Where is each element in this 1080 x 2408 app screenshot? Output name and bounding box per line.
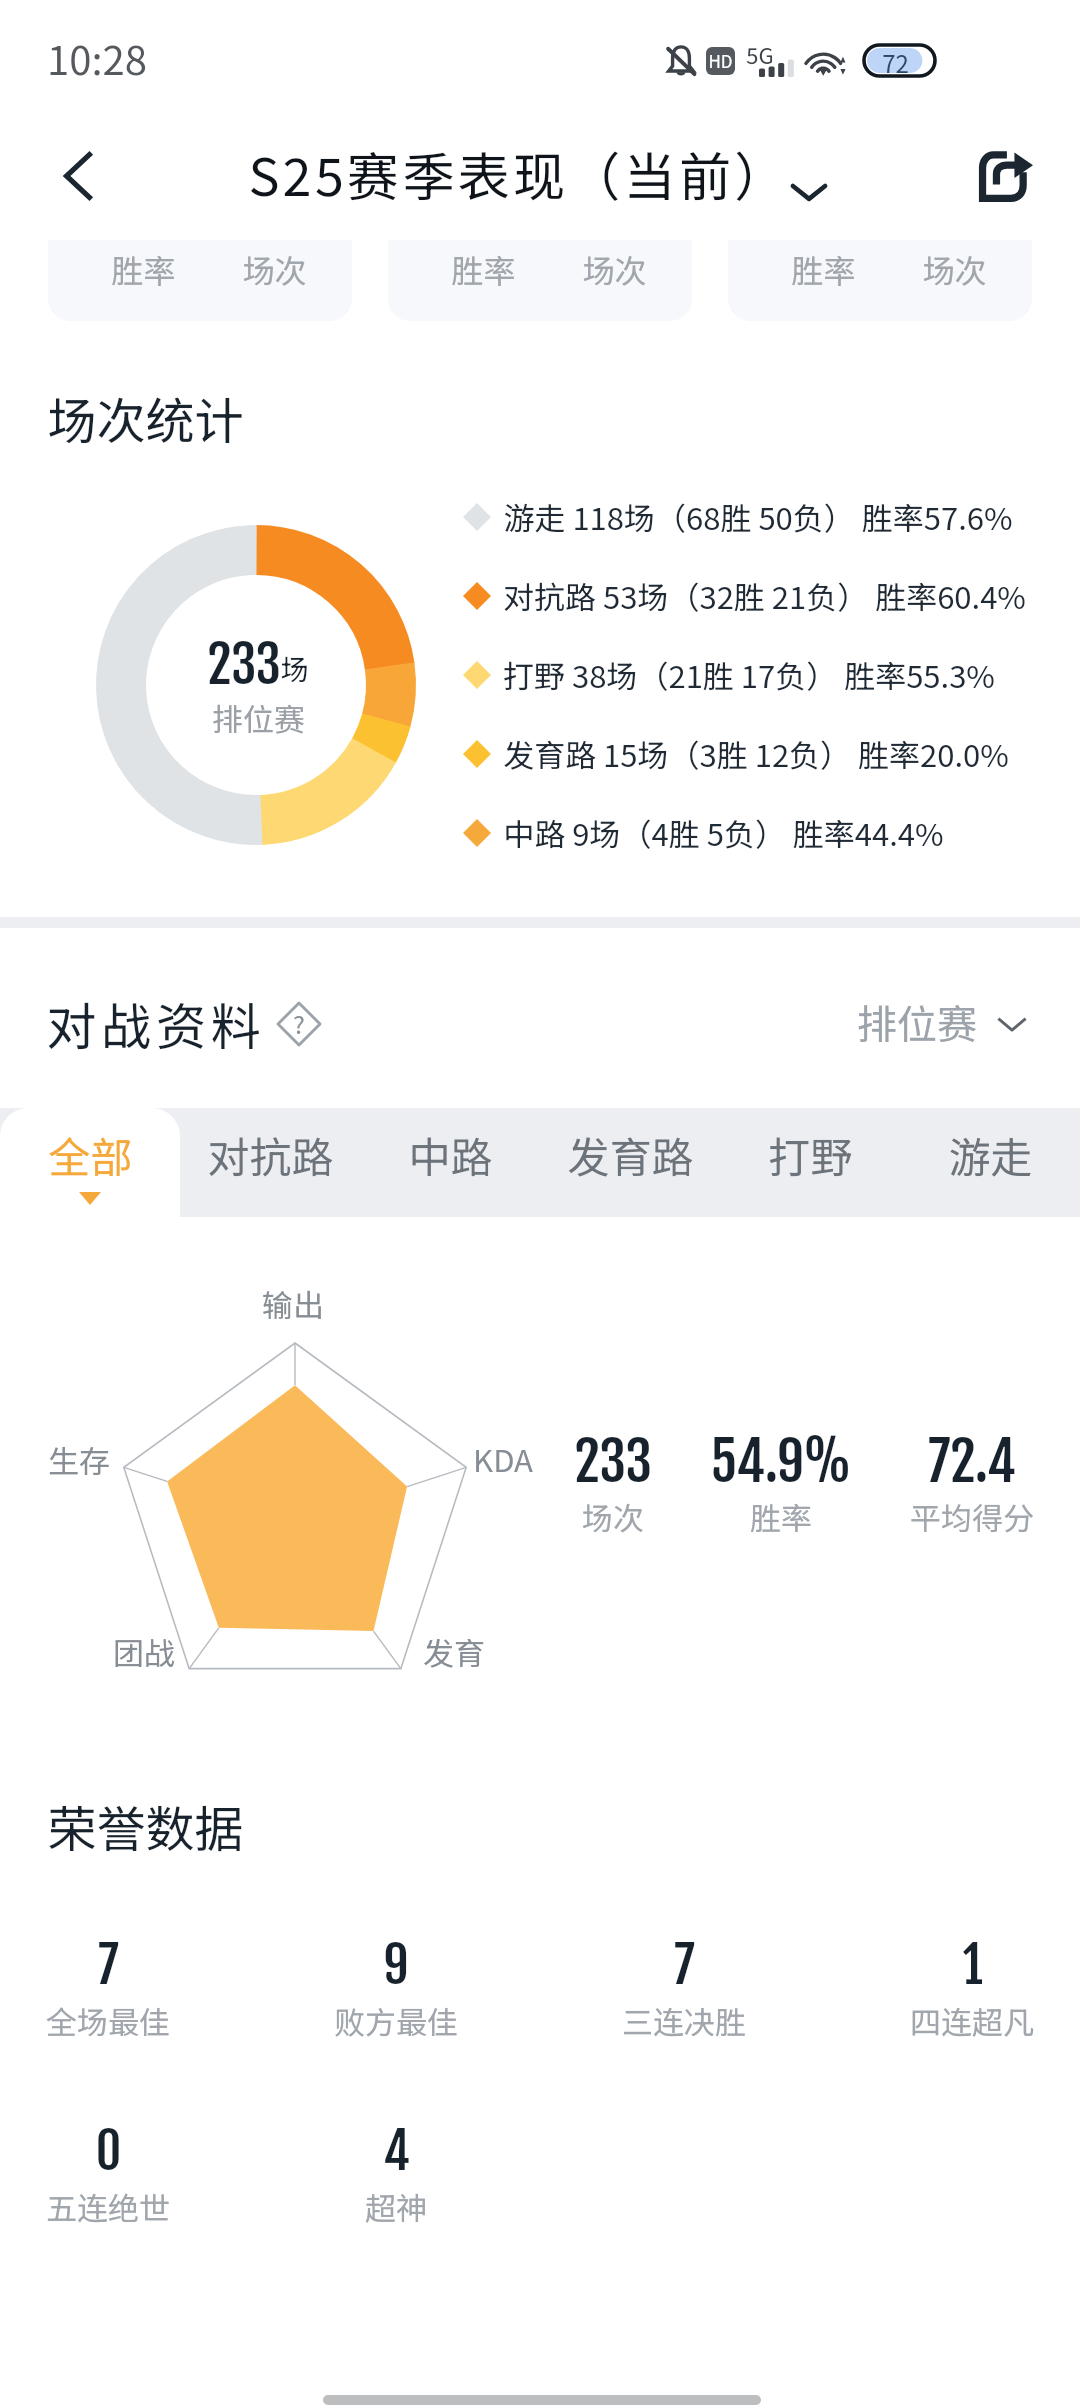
staticText: 中路	[408, 1124, 493, 1185]
staticText: 四连超凡	[910, 1998, 1034, 2043]
staticText: 5G	[746, 38, 774, 70]
staticText: 对抗路 53场（32胜 21负） 胜率60.4%	[503, 573, 1026, 618]
button[interactable]: 胜率	[48, 240, 352, 321]
button[interactable]: 全部	[0, 1108, 180, 1217]
staticText: 全场最佳	[46, 1998, 170, 2043]
staticText: 中路 9场（4胜 5负） 胜率44.4%	[503, 810, 944, 855]
button[interactable]: 胜率	[388, 240, 692, 321]
staticText: 10:28	[47, 29, 147, 87]
staticText: 0	[95, 2120, 122, 2183]
button[interactable]: Help	[276, 1001, 322, 1047]
staticText: 输出	[262, 1281, 324, 1326]
staticText: 排位赛	[212, 695, 305, 740]
button[interactable]: 对抗路	[180, 1108, 360, 1217]
staticText: 7	[674, 1934, 695, 1997]
staticText: 场次	[242, 246, 307, 292]
button[interactable]: S25赛季表现（当前）	[242, 131, 840, 205]
button[interactable]: 中路	[360, 1108, 540, 1217]
staticText: 三连决胜	[622, 1998, 746, 2043]
staticText: 排位赛	[857, 993, 977, 1051]
staticText: 4	[383, 2120, 410, 2183]
staticText: 胜率	[750, 1494, 812, 1539]
button[interactable]: 胜率	[728, 240, 1032, 321]
staticText: 54.9%	[710, 1428, 852, 1496]
staticText: 场次统计	[47, 382, 244, 453]
staticText: 游走 118场（68胜 50负） 胜率57.6%	[503, 494, 1013, 539]
staticText: 发育路	[567, 1124, 694, 1185]
staticText: 全部	[48, 1124, 133, 1185]
staticText: 胜率	[451, 246, 516, 292]
staticText: KDA	[473, 1436, 533, 1481]
staticText: 场次	[922, 246, 987, 292]
staticText: 胜率	[111, 246, 176, 292]
staticText: 团战	[113, 1629, 175, 1674]
staticText: 场	[280, 648, 309, 689]
staticText: 发育路 15场（3胜 12负） 胜率20.0%	[503, 731, 1009, 776]
button[interactable]: 打野	[720, 1108, 900, 1217]
staticText: 五连绝世	[46, 2184, 170, 2229]
staticText: 233	[574, 1428, 652, 1496]
button[interactable]: 发育路	[540, 1108, 720, 1217]
staticText: 生存	[48, 1437, 110, 1482]
button[interactable]: Back	[31, 128, 127, 224]
staticText: 9	[383, 1934, 409, 1997]
staticText: 打野 38场（21胜 17负） 胜率55.3%	[503, 652, 995, 697]
button[interactable]: Share	[954, 124, 1054, 224]
staticText: 游走	[948, 1124, 1033, 1185]
staticText: 场次	[582, 1494, 644, 1539]
staticText: 72	[882, 45, 909, 76]
staticText: 败方最佳	[334, 1998, 458, 2043]
staticText: 对抗路	[207, 1124, 334, 1185]
staticText: 发育	[423, 1629, 485, 1674]
staticText: 荣誉数据	[47, 1790, 244, 1861]
staticText: 打野	[768, 1124, 853, 1185]
staticText: 7	[98, 1934, 119, 1997]
staticText: 233	[207, 633, 281, 697]
staticText: 场次	[582, 246, 647, 292]
staticText: 平均得分	[910, 1494, 1034, 1539]
staticText: ?	[293, 1005, 305, 1041]
staticText: HD	[708, 48, 733, 73]
button[interactable]: 游走	[900, 1108, 1080, 1217]
staticText: S25赛季表现（当前）	[248, 136, 790, 210]
staticText: 72.4	[928, 1428, 1016, 1496]
staticText: 对战资料	[46, 987, 266, 1059]
staticText: 1	[962, 1934, 983, 1997]
button[interactable]: 排位赛	[857, 993, 1029, 1051]
staticText: 胜率	[791, 246, 856, 292]
staticText: 超神	[365, 2184, 427, 2229]
